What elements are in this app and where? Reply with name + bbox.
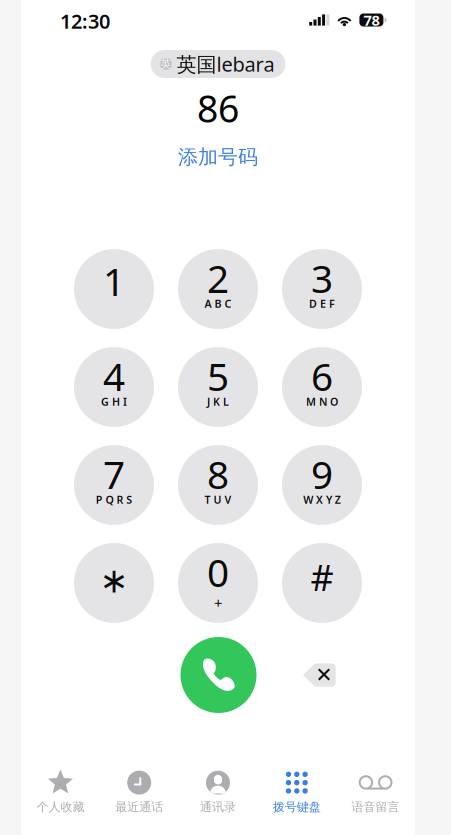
button[interactable]: 英 [150, 50, 285, 78]
button[interactable]: 3 [282, 249, 362, 329]
staticText: 语音留言 [352, 800, 400, 814]
button[interactable]: 0 [178, 543, 258, 623]
staticText: 0 [207, 546, 229, 598]
button[interactable]: 最近通话 [100, 768, 179, 816]
staticText: 86 [197, 83, 239, 133]
staticText: PQRS [96, 492, 132, 507]
staticText: WXYZ [303, 492, 341, 507]
staticText: 个人收藏 [36, 800, 84, 814]
button[interactable]: 9 [282, 445, 362, 525]
button[interactable]: 2 [178, 249, 258, 329]
staticText: GHI [101, 394, 127, 409]
button[interactable]: 通讯录 [179, 768, 257, 816]
staticText: 8 [207, 448, 229, 500]
staticText: DEF [309, 296, 335, 311]
button[interactable]: 7 [74, 445, 154, 525]
staticText: ABC [204, 296, 231, 311]
staticText: 1 [103, 255, 125, 307]
button[interactable]: 8 [178, 445, 258, 525]
button[interactable]: ∗ [74, 543, 154, 623]
staticText: 英国lebara [176, 51, 274, 77]
staticText: 英 [160, 57, 171, 70]
staticText: JKL [207, 394, 229, 409]
staticText: 78 [363, 10, 379, 30]
button[interactable]: 个人收藏 [21, 768, 100, 816]
staticText: + [214, 593, 222, 613]
staticText: 添加号码 [178, 145, 258, 169]
button[interactable]: # [282, 543, 362, 623]
staticText: 通讯录 [200, 800, 236, 814]
staticText: 2 [207, 252, 229, 304]
staticText: 5 [207, 350, 229, 402]
staticText: 6 [311, 350, 333, 402]
staticText: 拨号键盘 [273, 800, 321, 814]
staticText: ∗ [99, 561, 128, 600]
button[interactable]: Delete [296, 654, 342, 696]
button[interactable]: Call [180, 637, 256, 713]
button[interactable]: 6 [282, 347, 362, 427]
staticText: 最近通话 [115, 800, 163, 814]
staticText: MNO [306, 394, 338, 409]
staticText: TUV [204, 492, 231, 507]
button[interactable]: 拨号键盘 [257, 768, 336, 816]
staticText: 7 [103, 448, 125, 500]
staticText: 9 [311, 448, 333, 500]
button[interactable]: 语音留言 [336, 768, 415, 816]
button[interactable]: 1 [74, 249, 154, 329]
staticText: 4 [103, 350, 125, 402]
button[interactable]: 4 [74, 347, 154, 427]
button[interactable]: 5 [178, 347, 258, 427]
staticText: 12:30 [60, 8, 110, 34]
button[interactable]: 添加号码 [178, 145, 258, 169]
staticText: # [310, 553, 333, 601]
staticText: 3 [311, 252, 333, 304]
